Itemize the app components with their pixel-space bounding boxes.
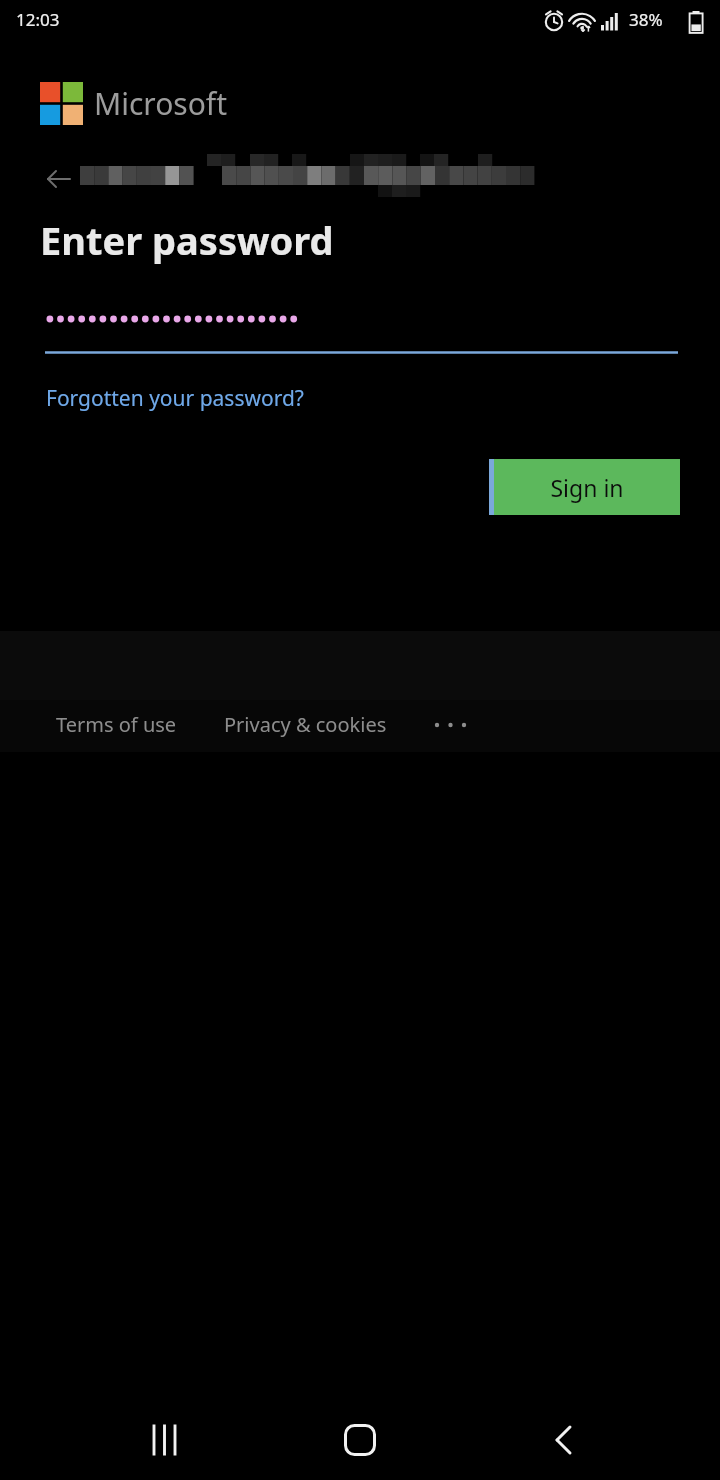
button[interactable]: Forgotten your password? <box>45 382 305 415</box>
staticText: Privacy & cookies <box>224 711 387 738</box>
staticText: Terms of use <box>56 711 177 738</box>
button[interactable]: Recent apps <box>120 1408 200 1472</box>
button[interactable]: Terms of use <box>56 711 177 738</box>
button[interactable]: Privacy & cookies <box>224 711 387 738</box>
staticText: Enter password <box>40 214 334 266</box>
button[interactable]: Back <box>520 1408 600 1472</box>
staticText: Forgotten your password? <box>46 384 304 413</box>
button[interactable]: Sign in <box>489 459 678 515</box>
button[interactable] <box>80 152 540 200</box>
button[interactable]: Home <box>320 1408 400 1472</box>
button[interactable] <box>45 290 678 356</box>
staticText: Sign in <box>550 472 624 503</box>
button[interactable]: Back <box>40 158 80 198</box>
staticText: 12:03 <box>16 8 60 31</box>
staticText: 38% <box>629 8 663 31</box>
button[interactable]: More options <box>428 706 474 742</box>
staticText: Microsoft <box>94 83 227 124</box>
